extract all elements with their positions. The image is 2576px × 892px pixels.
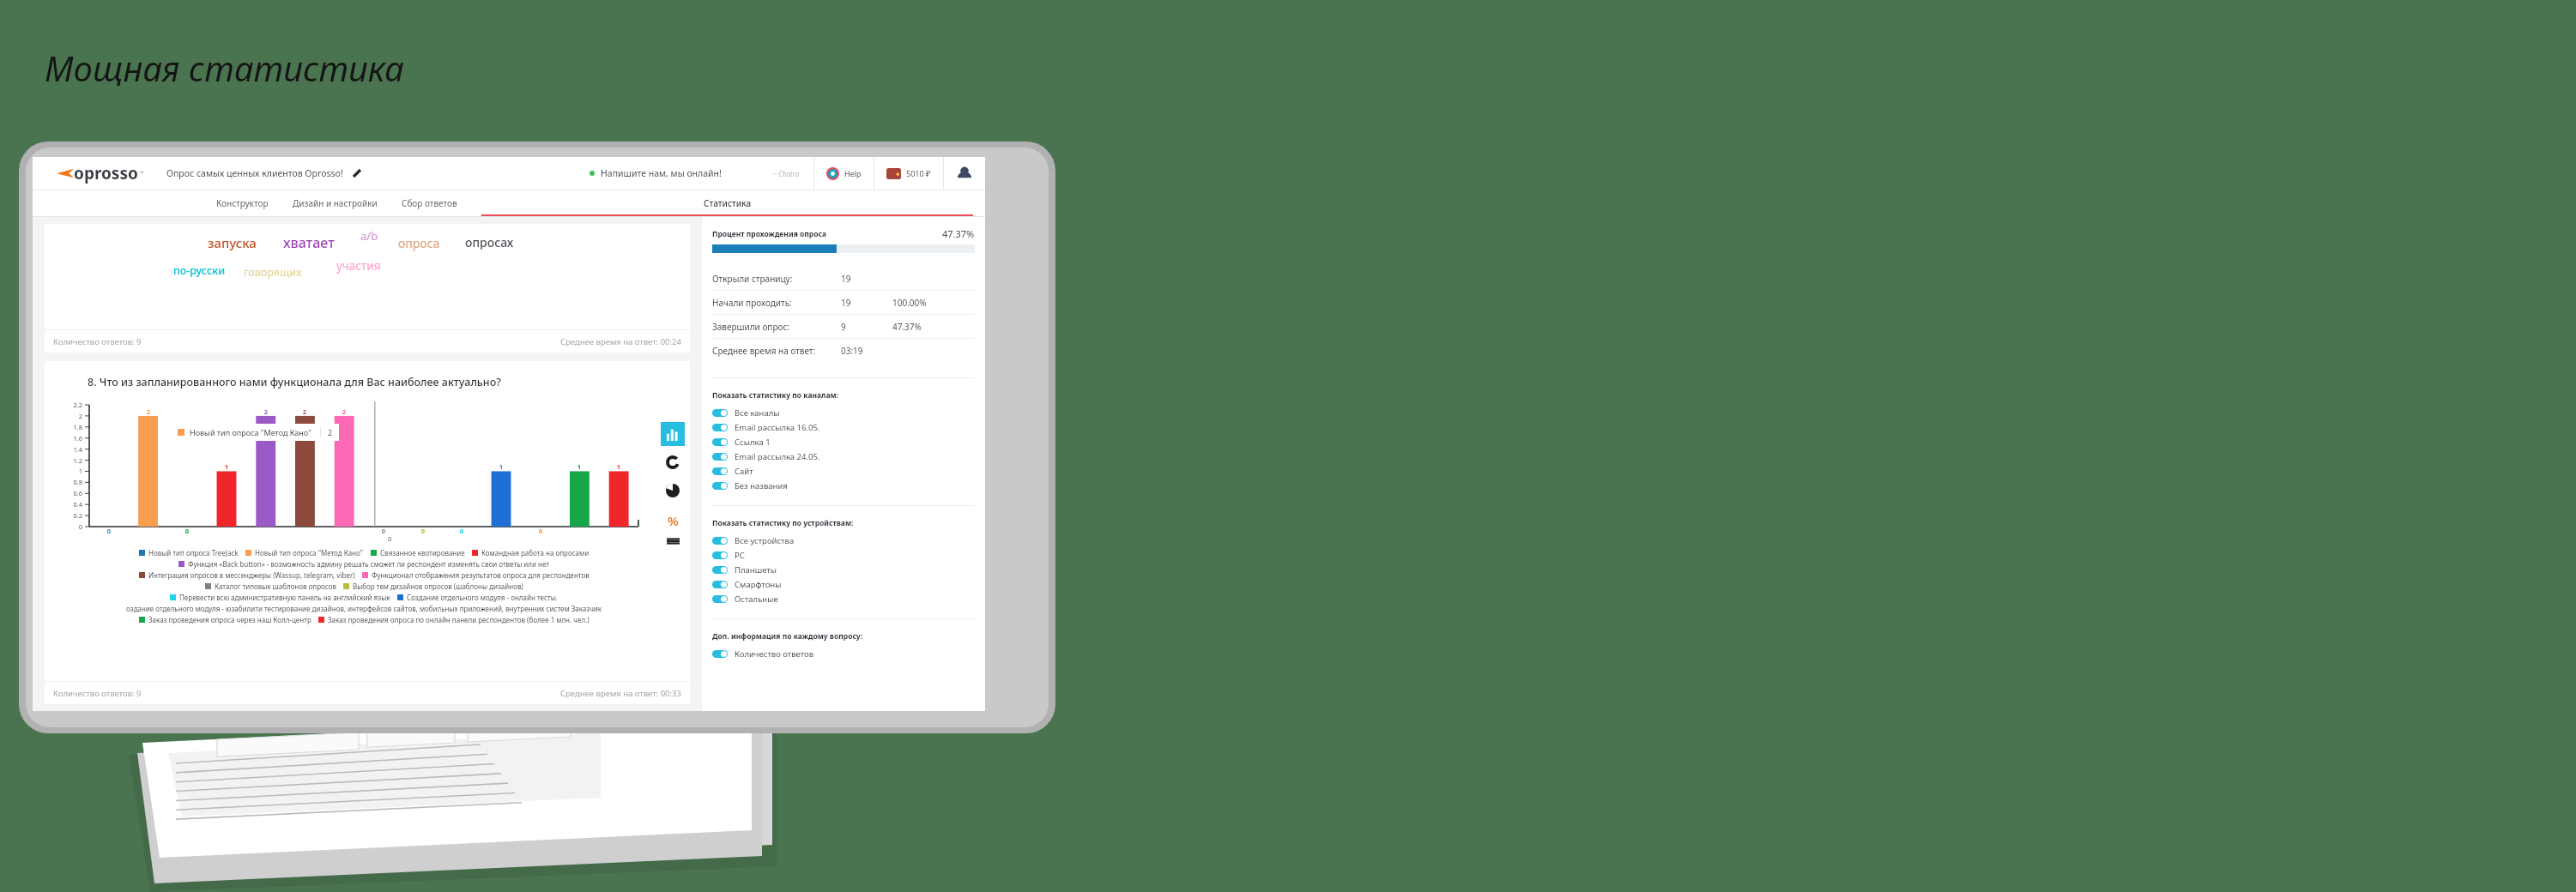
staticText: говорящих [244,265,302,280]
staticText: Напишите нам, мы онлайн! [601,167,722,179]
staticText: Показать статистику по каналам: [712,390,838,401]
staticText: 2 [337,407,351,416]
staticText: 0 [180,527,194,535]
staticText: 5010 ₽ [906,168,931,178]
button[interactable]: Аккаунт [944,157,985,190]
staticText: 2 [298,407,311,416]
staticText: Открыли страницу: [712,273,841,285]
staticText: Новый тип опроса "Метод Кано" [255,548,364,557]
staticText: Без названия [735,480,788,491]
staticText: Функционал отображения результатов опрос… [372,570,590,580]
staticText: Все устройства [735,535,795,546]
staticText: хватает [283,233,335,252]
staticText: 2 [259,407,273,416]
button[interactable]: Дизайн и настройки [281,190,390,216]
staticText: ™ [140,170,144,177]
staticText: 0.2 [57,511,82,520]
staticText: 0 [416,527,430,535]
button[interactable]: Статистика [469,190,985,216]
button[interactable]: Все устройства [712,533,975,548]
button[interactable]: Количество ответов [712,647,975,661]
staticText: Функция «Back button» - возможность адми… [188,559,549,569]
staticText: Командная работа на опросами [481,548,590,557]
staticText: oprosso [74,162,138,184]
button[interactable]: Напишите нам, мы онлайн! [590,167,800,179]
button[interactable]: Сайт [712,464,975,479]
button[interactable]: Ссылка 1 [712,435,975,449]
staticText: запуска [208,234,257,251]
staticText: Дизайн и настройки [293,197,378,209]
button[interactable]: Проценты [661,509,685,533]
button[interactable]: PC [712,548,975,563]
staticText: Завершили опрос: [712,321,841,333]
staticText: 47.37% [942,227,975,240]
staticText: 19 [841,273,892,285]
staticText: опросах [465,234,514,250]
staticText: Новый тип опроса TreeJack [148,548,239,557]
staticText: Смарфтоны [735,579,782,590]
staticText: Остальные [735,594,778,605]
staticText: 1 [612,462,626,471]
staticText: 1.2 [57,456,82,465]
staticText: 1.4 [57,445,82,454]
button[interactable]: Email рассылка 24.05. [712,449,975,464]
staticText: Сбор ответов [402,197,457,209]
staticText: Заказ проведения опроса через наш Колл-ц… [148,615,311,624]
staticText: 1 [572,462,586,471]
button[interactable]: Все каналы [712,406,975,420]
button[interactable]: Столбчатая диаграмма [661,422,685,446]
staticText: 0 [388,534,392,543]
staticText: % [668,512,679,529]
staticText: 1 [57,467,82,475]
button[interactable]: Help [814,157,874,190]
button[interactable]: Сбор ответов [390,190,469,216]
button[interactable]: Редактировать [352,168,362,178]
staticText: 0 [57,522,82,531]
staticText: Начали проходить: [712,297,841,309]
button[interactable]: oprosso [57,162,144,184]
staticText: 0 [455,527,469,535]
staticText: 0 [102,527,116,535]
staticText: Количество ответов: 9 [53,336,142,347]
staticText: Ссылка 1 [735,437,771,448]
button[interactable]: Таблица [661,537,685,545]
staticText: 19 [841,297,892,309]
button[interactable]: Без названия [712,479,975,493]
staticText: Email рассылка 16.05. [735,422,820,433]
button[interactable]: Email рассылка 16.05. [712,420,975,435]
staticText: 1 [494,462,508,471]
button[interactable]: Планшеты [712,563,975,577]
staticText: Планшеты [735,564,777,576]
staticText: Мощная статистика [45,45,404,91]
staticText: 47.37% [892,321,922,333]
button[interactable]: 5010 ₽ [874,157,943,190]
staticText: Help [844,168,862,178]
staticText: Интеграция опросов в мессенджеры (Wassup… [148,570,355,580]
staticText: Все каналы [735,407,780,419]
staticText: Статистика [704,197,752,209]
staticText: Среднее время на ответ: [712,345,841,357]
staticText: 1.6 [57,434,82,443]
staticText: 0.8 [57,478,82,486]
button[interactable]: Остальные [712,592,975,606]
staticText: 2 [142,407,155,416]
staticText: Опрос самых ценных клиентов Oprosso! [166,167,343,179]
button[interactable]: Круговая диаграмма [661,479,685,503]
staticText: Заказ проведения опроса по онлайн панели… [328,615,590,624]
staticText: Выбор тем дизайнов опросов (шаблоны диза… [353,582,523,591]
staticText: 2 [328,427,333,437]
staticText: 03:19 [841,345,892,357]
staticText: Конструктор [216,197,269,209]
button[interactable]: Кольцевая диаграмма [661,450,685,474]
staticText: оздание отдельного модуля - юзабилити те… [126,604,602,613]
button[interactable]: Смарфтоны [712,577,975,592]
staticText: Количество ответов [735,648,814,660]
button[interactable]: Конструктор [204,190,281,216]
staticText: Доп. информация по каждому вопросу: [712,631,863,642]
staticText: Каталог типовых шаблонов опросов [215,582,336,591]
staticText: Количество ответов: 9 [53,688,142,699]
staticText: Среднее время на ответ: 00:24 [560,336,681,347]
staticText: Процент прохождения опроса [712,229,826,239]
staticText: Создание отдельного модуля - онлайн тест… [407,593,558,602]
staticText: Среднее время на ответ: 00:33 [560,688,681,699]
